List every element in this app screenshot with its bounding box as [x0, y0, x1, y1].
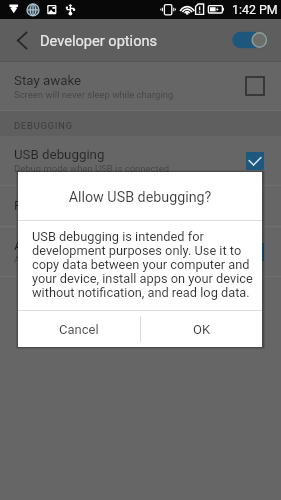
- button[interactable]: USB debugging: [0, 136, 281, 185]
- staticText: DEBUGGING: [14, 120, 73, 131]
- staticText: Cancel: [59, 322, 99, 337]
- staticText: USB debugging: [14, 147, 105, 163]
- button[interactable]: Allow mock locations: [0, 227, 281, 276]
- staticText: Debug mode when USB is connected: [14, 163, 170, 174]
- button[interactable]: OK: [141, 311, 262, 347]
- button[interactable]: Stay awake: [0, 62, 281, 110]
- staticText: Revoke USB debugging authorizations: [14, 198, 239, 214]
- staticText: Allow USB debugging?: [18, 189, 262, 206]
- button[interactable]: Cancel: [18, 311, 140, 347]
- staticText: 1:42 PM: [232, 2, 278, 17]
- staticText: Allow mock locations: [14, 238, 141, 254]
- staticText: Stay awake: [14, 73, 82, 89]
- staticText: Allow mock locations: [14, 254, 105, 265]
- staticText: Screen will never sleep while charging: [14, 89, 174, 100]
- button[interactable]: Developer options on: [226, 19, 274, 61]
- staticText: USB debugging is intended for developmen…: [32, 229, 254, 300]
- button[interactable]: Revoke USB debugging authorizations: [0, 186, 281, 226]
- staticText: Developer options: [40, 32, 158, 49]
- staticText: OK: [193, 322, 211, 337]
- button[interactable]: Navigate up: [8, 19, 36, 61]
